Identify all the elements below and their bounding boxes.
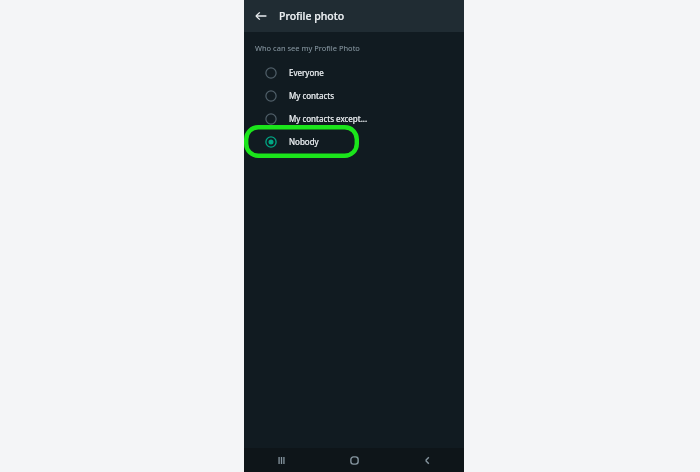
- button[interactable]: Back: [391, 448, 464, 472]
- staticText: Profile photo: [279, 9, 345, 23]
- button[interactable]: My contacts: [244, 84, 464, 107]
- button[interactable]: My contacts except...: [244, 107, 464, 130]
- staticText: My contacts: [289, 90, 334, 101]
- staticText: Everyone: [289, 67, 324, 78]
- staticText: Who can see my Profile Photo: [255, 43, 360, 53]
- button[interactable]: Home: [318, 448, 391, 472]
- staticText: Nobody: [289, 136, 319, 147]
- staticText: My contacts except...: [289, 113, 368, 124]
- button[interactable]: Recent apps: [244, 448, 318, 472]
- button[interactable]: Everyone: [244, 61, 464, 84]
- button[interactable]: Nobody: [244, 130, 464, 153]
- button[interactable]: Back: [248, 3, 274, 29]
